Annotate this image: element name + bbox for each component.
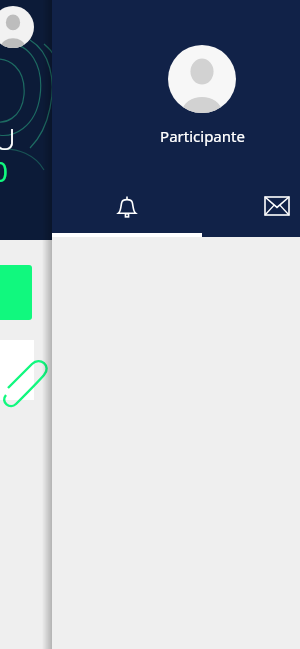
button[interactable]: Mensajes — [202, 184, 300, 237]
button[interactable]: Notificaciones — [52, 184, 202, 237]
button[interactable] — [0, 265, 32, 320]
staticText: 0 — [0, 152, 9, 190]
staticText: U — [0, 118, 16, 159]
button[interactable] — [0, 340, 34, 400]
staticText: Participante — [160, 126, 245, 146]
button[interactable]: Perfil — [0, 6, 34, 48]
button[interactable]: Foto de perfil — [168, 45, 236, 113]
